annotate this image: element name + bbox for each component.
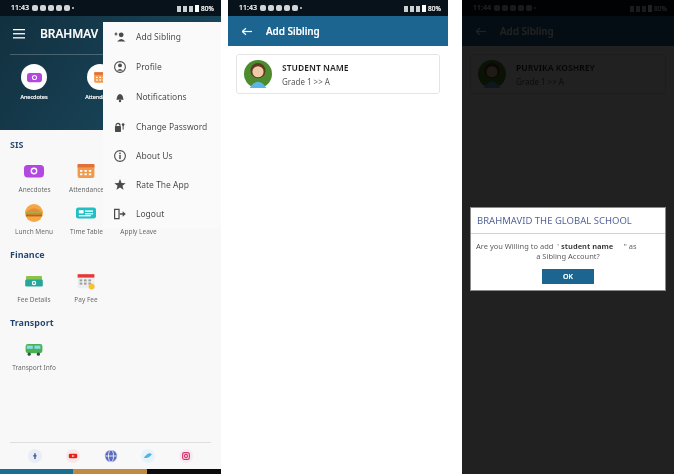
staticText: 11:43 <box>239 3 257 13</box>
button[interactable]: About Us <box>103 141 221 170</box>
staticText: Lunch Menu <box>15 227 53 236</box>
staticText: 80% <box>428 4 441 13</box>
button[interactable]: Fee Details <box>8 270 60 304</box>
button[interactable]: Anecdotes <box>8 160 60 194</box>
staticText: 11:44 <box>473 3 491 13</box>
staticText: Transport Info <box>12 363 56 372</box>
staticText: " as <box>614 241 637 251</box>
button[interactable]: Apply <box>144 64 188 100</box>
staticText: Grade 1 >> A <box>516 76 564 87</box>
staticText: BRAHMAV <box>40 25 99 41</box>
staticText: STUDENT NAME <box>282 62 349 74</box>
button[interactable]: Pay Fee <box>60 270 112 304</box>
button[interactable]: Profile <box>103 52 221 82</box>
button[interactable]: Website <box>102 447 120 465</box>
button[interactable]: Rate The App <box>103 170 221 199</box>
button[interactable]: Change Password <box>103 112 221 141</box>
staticText: Logout <box>136 208 165 220</box>
staticText: Grade 1 >> A <box>282 76 330 87</box>
staticText: SIS <box>10 138 24 150</box>
staticText: Finance <box>10 248 45 260</box>
button[interactable]: Lunch Menu <box>8 202 60 236</box>
staticText: 80% <box>654 4 667 13</box>
button[interactable]: Attendance <box>78 64 122 100</box>
staticText: Rate The App <box>136 179 189 191</box>
staticText: About Us <box>136 150 173 162</box>
button[interactable]: OK <box>542 269 594 284</box>
button[interactable]: Back <box>472 23 488 39</box>
button[interactable]: Attendance <box>60 160 112 194</box>
button[interactable]: Back <box>238 23 254 39</box>
staticText: 80% <box>201 4 214 13</box>
button[interactable]: Add Sibling <box>103 22 221 52</box>
staticText: OK <box>563 272 573 282</box>
staticText: Time Table <box>70 227 103 236</box>
staticText: Pay Fee <box>74 295 98 304</box>
staticText: PURVIKA KOSHREY <box>516 62 595 74</box>
staticText: Fee Details <box>17 295 51 304</box>
staticText: Profile <box>136 61 162 73</box>
staticText: Anecdotes <box>20 93 48 100</box>
button[interactable]: Notifications <box>103 82 221 112</box>
staticText: Anecdotes <box>18 185 51 194</box>
staticText: Transport <box>10 316 54 328</box>
button[interactable]: Open navigation drawer <box>10 24 28 42</box>
staticText: Apply <box>159 93 174 100</box>
staticText: Attendance <box>69 185 104 194</box>
button[interactable]: YouTube <box>64 447 82 465</box>
staticText: Add Sibling <box>500 24 554 38</box>
button[interactable]: Time Table <box>60 202 112 236</box>
button[interactable]: Apply Leave <box>112 202 164 236</box>
button[interactable]: Twitter <box>139 447 157 465</box>
button[interactable]: PURVIKA KOSHREY <box>470 54 666 94</box>
button[interactable]: Anecdotes <box>12 64 56 100</box>
button[interactable]: Transport Info <box>8 338 60 372</box>
staticText: Are you Willing to add ' <box>476 241 561 251</box>
button[interactable]: STUDENT NAME <box>236 54 440 94</box>
staticText: Apply Leave <box>120 227 157 236</box>
staticText: BRAHMAVID THE GLOBAL SCHOOL <box>477 214 632 227</box>
button[interactable]: Facebook <box>26 447 44 465</box>
staticText: 11:43 <box>11 3 29 13</box>
button[interactable]: Instagram <box>177 447 195 465</box>
staticText: a Sibling Account? <box>470 251 666 261</box>
staticText: Attendance <box>85 93 115 100</box>
staticText: student name <box>561 241 614 251</box>
staticText: Add Sibling <box>136 31 182 43</box>
staticText: Notifications <box>136 91 187 103</box>
staticText: Add Sibling <box>266 24 320 38</box>
staticText: Change Password <box>136 121 208 133</box>
button[interactable]: Logout <box>103 199 221 228</box>
